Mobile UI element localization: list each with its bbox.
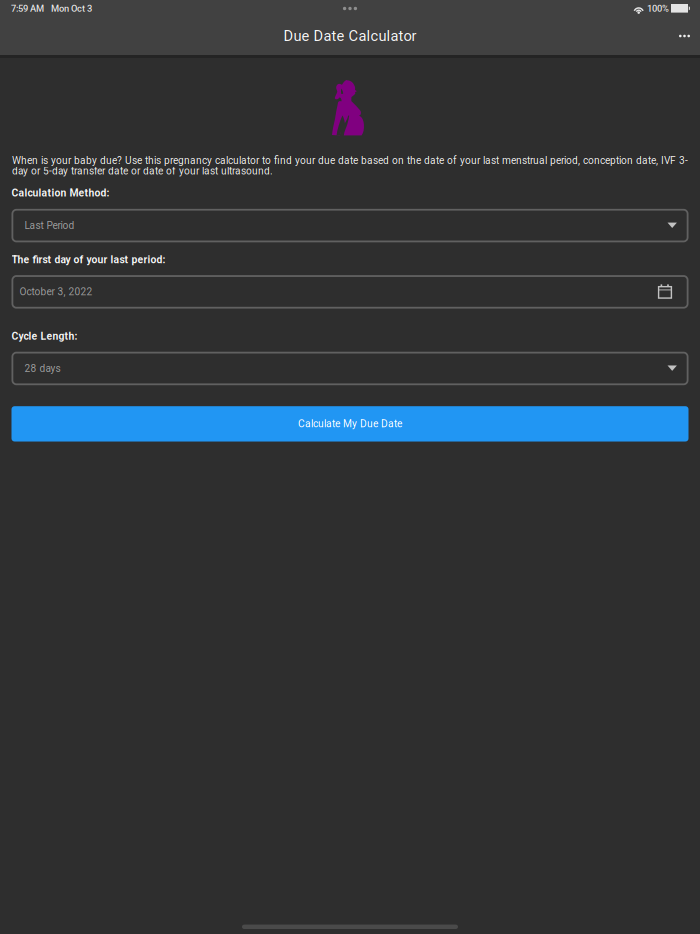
staticText: 100%	[647, 3, 669, 14]
staticText: The first day of your last period:	[11, 253, 165, 266]
staticText: When is your baby due? Use this pregnanc…	[12, 155, 688, 177]
button[interactable]: 28 days	[11, 352, 688, 385]
staticText: Mon Oct 3	[51, 3, 92, 14]
staticText: Cycle Length:	[11, 330, 77, 342]
staticText: 7:59 AM	[11, 3, 44, 14]
staticText: Calculation Method:	[11, 187, 109, 199]
staticText: Last Period	[24, 220, 74, 231]
staticText: Calculate My Due Date	[298, 418, 402, 430]
staticText: October 3, 2022	[19, 286, 92, 298]
button[interactable]: Last Period	[11, 209, 688, 242]
staticText: Due Date Calculator	[283, 27, 416, 45]
button[interactable]: October 3, 2022	[11, 275, 688, 309]
button[interactable]: Calculate My Due Date	[11, 406, 688, 441]
staticText: 28 days	[24, 362, 60, 374]
button[interactable]: More options	[669, 17, 700, 55]
